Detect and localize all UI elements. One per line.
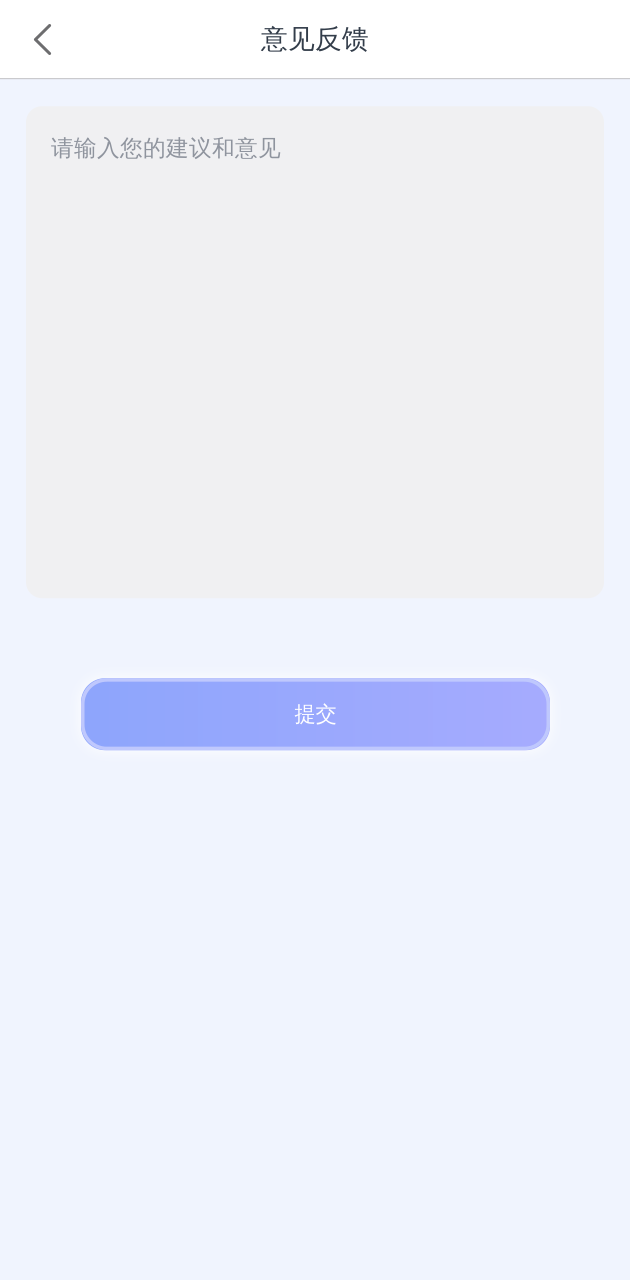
button[interactable]: Back <box>10 7 74 71</box>
staticText: 提交 <box>294 701 336 727</box>
button[interactable]: 请输入您的建议和意见 <box>26 106 604 598</box>
staticText: 意见反馈 <box>261 23 369 55</box>
staticText: 请输入您的建议和意见 <box>51 134 281 162</box>
button[interactable]: 提交 <box>81 678 550 750</box>
